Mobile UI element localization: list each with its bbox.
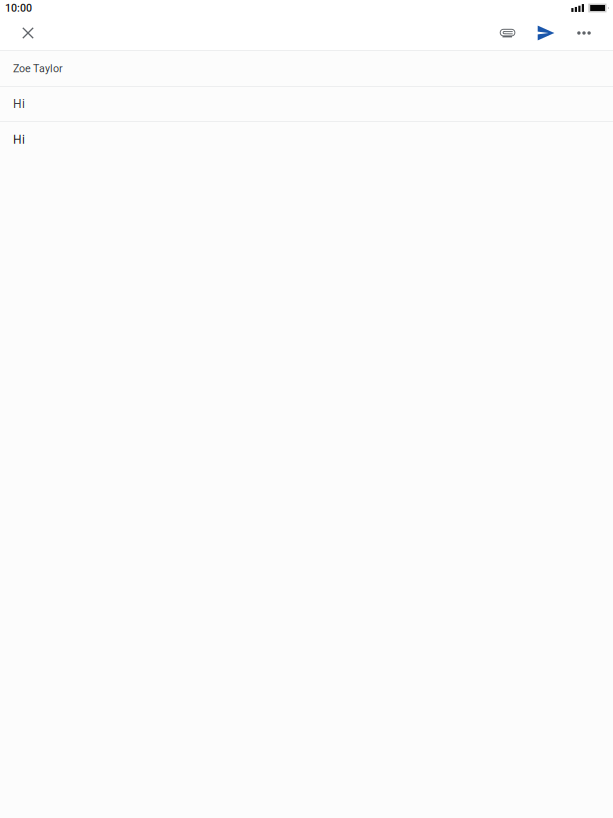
staticText: Hi (13, 97, 25, 111)
button[interactable]: Attach file (489, 16, 527, 50)
button[interactable]: More options (565, 16, 603, 50)
staticText: Hi (13, 133, 25, 147)
staticText: 10:00 (5, 2, 32, 14)
button[interactable]: Hi (0, 87, 613, 122)
staticText: Zoe Taylor (13, 62, 63, 75)
button[interactable]: Discard draft (11, 16, 45, 50)
button[interactable]: Send (527, 16, 565, 50)
button[interactable]: Zoe Taylor (0, 51, 613, 87)
